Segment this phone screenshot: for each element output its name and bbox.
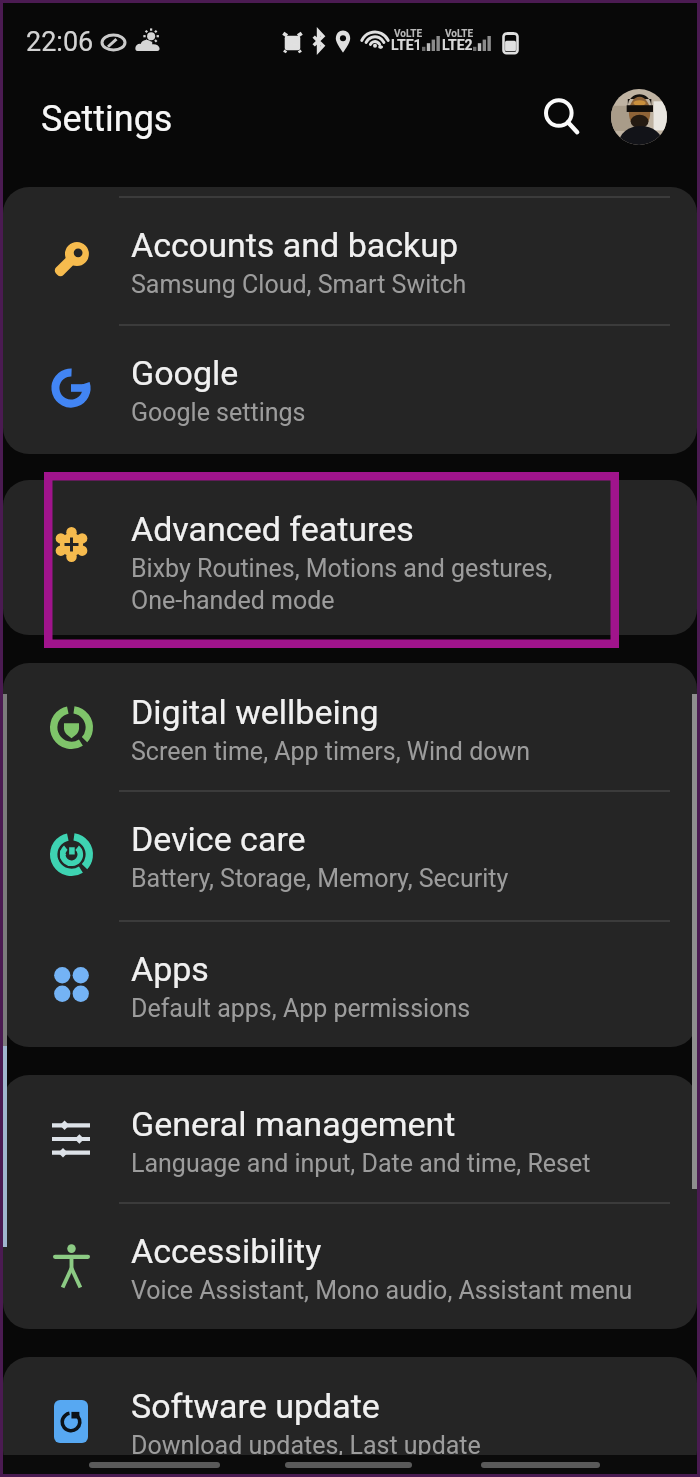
staticText: Google [131, 353, 239, 393]
staticText: Download updates, Last update [131, 1431, 481, 1460]
staticText: Accounts and backup [131, 225, 459, 265]
staticText: VoLTE [394, 28, 423, 40]
button[interactable]: Recents [89, 1462, 220, 1468]
button[interactable]: Accessibility [3, 1202, 697, 1329]
staticText: Battery, Storage, Memory, Security [131, 864, 509, 893]
staticText: General management [131, 1104, 456, 1144]
button[interactable]: Home [285, 1462, 412, 1468]
staticText: Samsung Cloud, Smart Switch [131, 270, 467, 299]
button[interactable]: Profile [611, 89, 667, 145]
button[interactable]: General management [3, 1075, 697, 1203]
button[interactable]: Accounts and backup [3, 196, 697, 324]
button[interactable]: Apps [3, 920, 697, 1047]
staticText: LTE2 [442, 37, 473, 53]
staticText: Accessibility [131, 1231, 322, 1271]
staticText: VoLTE [445, 28, 474, 40]
staticText: Default apps, App permissions [131, 994, 471, 1023]
staticText: Digital wellbeing [131, 692, 379, 732]
staticText: Advanced features [131, 509, 414, 549]
button[interactable]: Digital wellbeing [3, 663, 697, 791]
staticText: Software update [131, 1386, 380, 1426]
staticText: Voice Assistant, Mono audio, Assistant m… [131, 1276, 633, 1305]
staticText: Screen time, App timers, Wind down [131, 737, 531, 766]
staticText: 22:06 [26, 26, 94, 58]
button[interactable]: Software update [3, 1357, 697, 1477]
staticText: Apps [131, 949, 209, 989]
button[interactable]: Advanced features [3, 480, 697, 608]
staticText: Device care [131, 819, 306, 859]
staticText: Language and input, Date and time, Reset [131, 1149, 591, 1178]
staticText: Google settings [131, 398, 306, 427]
button[interactable]: Google [3, 324, 697, 452]
button[interactable]: Back [481, 1462, 600, 1468]
button[interactable]: Device care [3, 790, 697, 918]
staticText: Settings [41, 98, 173, 140]
staticText: Bixby Routines, Motions and gestures, On… [131, 554, 553, 615]
staticText: LTE1 [391, 37, 422, 53]
button[interactable]: Search [534, 89, 590, 145]
